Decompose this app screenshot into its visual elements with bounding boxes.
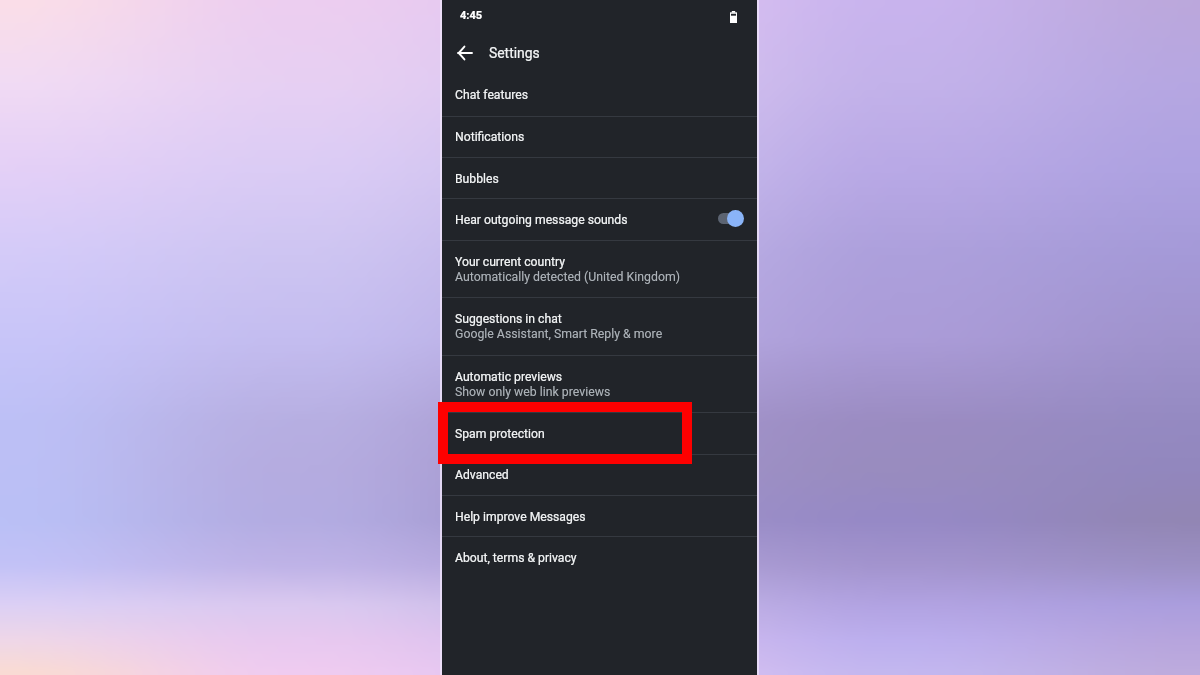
staticText: Spam protection — [455, 427, 545, 441]
staticText: Show only web link previews — [455, 385, 611, 399]
button[interactable]: Chat features — [442, 74, 757, 116]
button[interactable]: Back — [446, 31, 484, 74]
staticText: 4:45 — [460, 9, 483, 22]
staticText: Help improve Messages — [455, 510, 586, 524]
button[interactable]: Suggestions in chat — [442, 298, 757, 355]
button[interactable]: Automatic previews — [442, 356, 757, 413]
staticText: Automatic previews — [455, 370, 563, 384]
staticText: Bubbles — [455, 172, 499, 186]
button[interactable]: Bubbles — [442, 158, 757, 199]
staticText: About, terms & privacy — [455, 551, 577, 565]
button[interactable]: Hear outgoing message sounds — [442, 199, 757, 240]
button[interactable]: Help improve Messages — [442, 496, 757, 537]
button[interactable]: Spam protection — [442, 413, 757, 454]
staticText: Suggestions in chat — [455, 312, 562, 326]
staticText: Settings — [489, 45, 540, 61]
button[interactable]: About, terms & privacy — [442, 537, 757, 578]
staticText: Chat features — [455, 88, 528, 102]
staticText: Automatically detected (United Kingdom) — [455, 270, 680, 284]
staticText: Google Assistant, Smart Reply & more — [455, 327, 663, 341]
button[interactable]: Your current country — [442, 241, 757, 298]
button[interactable]: Advanced — [442, 455, 757, 495]
staticText: Your current country — [455, 255, 565, 269]
staticText: Notifications — [455, 130, 525, 144]
staticText: Hear outgoing message sounds — [455, 213, 718, 227]
button[interactable]: Notifications — [442, 117, 757, 157]
staticText: Advanced — [455, 468, 509, 482]
